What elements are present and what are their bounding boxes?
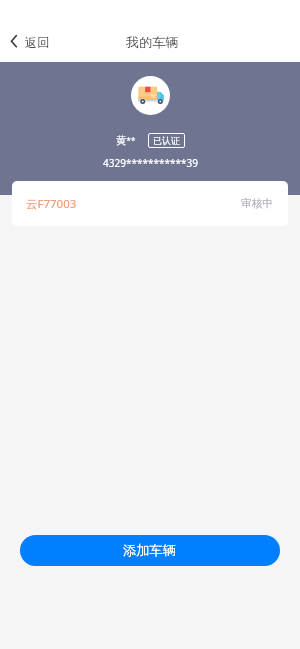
button[interactable]: 返回 bbox=[7, 31, 53, 53]
staticText: 添加车辆 bbox=[123, 542, 177, 559]
staticText: 我的车辆 bbox=[126, 34, 179, 51]
staticText: 已认证 bbox=[153, 135, 180, 146]
staticText: 返回 bbox=[25, 35, 50, 50]
button[interactable]: 添加车辆 bbox=[20, 535, 280, 566]
staticText: 黄** bbox=[116, 134, 136, 147]
staticText: 4329***********39 bbox=[103, 156, 198, 170]
staticText: 云F77003 bbox=[26, 196, 77, 212]
button[interactable]: 云F77003 bbox=[12, 181, 288, 226]
staticText: 审核中 bbox=[241, 197, 274, 211]
